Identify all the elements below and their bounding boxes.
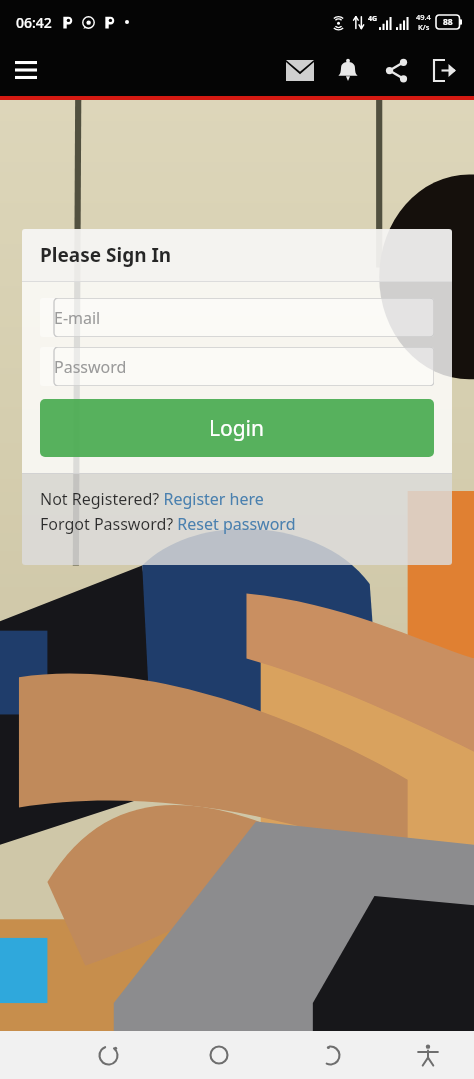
button[interactable]: Accessibility — [405, 1032, 451, 1078]
button[interactable]: Login — [40, 399, 434, 457]
staticText: Login — [209, 414, 265, 443]
button[interactable]: Not Registered? Register here — [40, 488, 264, 510]
staticText: 4G — [368, 14, 378, 24]
button[interactable]: Share — [374, 48, 418, 92]
button[interactable]: Messages — [278, 48, 322, 92]
staticText: 49.4 — [416, 12, 431, 22]
staticText: Password — [54, 356, 127, 378]
staticText: K/s — [418, 22, 430, 32]
button[interactable]: Home — [196, 1032, 242, 1078]
button[interactable]: Open navigation menu — [6, 50, 46, 90]
button[interactable]: Back — [307, 1032, 353, 1078]
staticText: Forgot Password? Reset password — [40, 513, 296, 535]
staticText: Please Sign In — [40, 242, 172, 268]
button[interactable]: Logout — [422, 48, 466, 92]
button[interactable]: Recent apps — [85, 1032, 131, 1078]
button[interactable]: E-mail — [40, 298, 434, 337]
button[interactable]: Password — [40, 347, 434, 386]
button[interactable]: Notifications — [326, 48, 370, 92]
button[interactable]: Forgot Password? Reset password — [40, 513, 296, 535]
staticText: 06:42 — [16, 13, 52, 32]
staticText: 88 — [443, 16, 453, 28]
staticText: Not Registered? Register here — [40, 488, 264, 510]
staticText: E-mail — [54, 307, 101, 329]
